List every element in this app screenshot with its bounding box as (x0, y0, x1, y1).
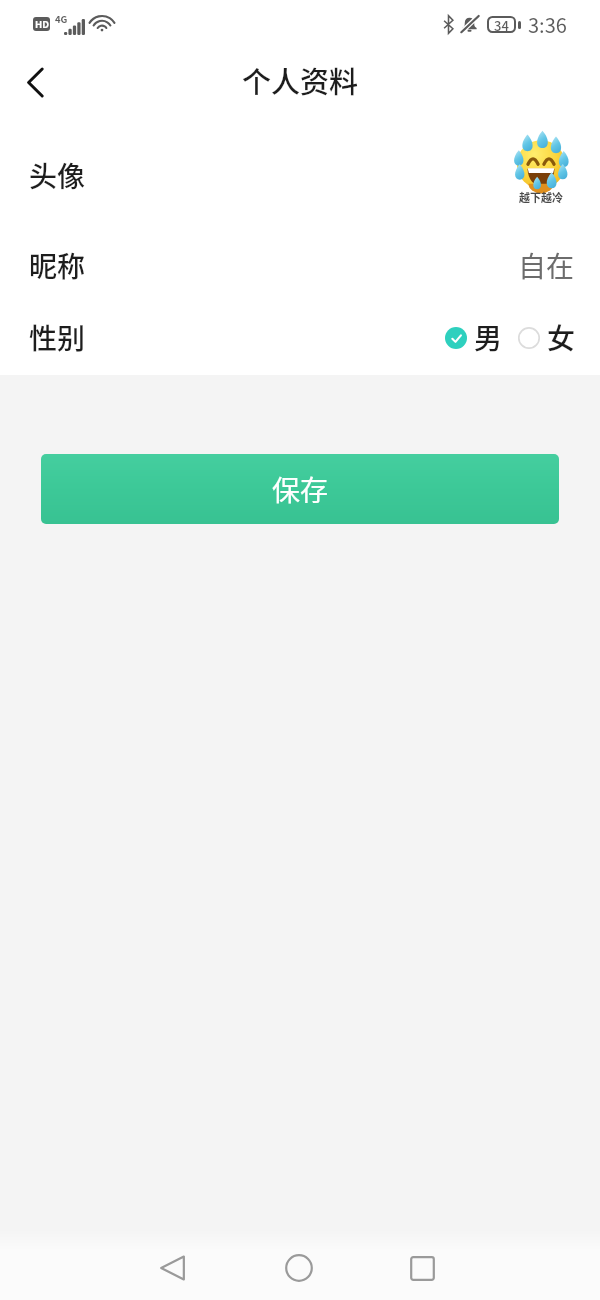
staticText: 自在 (518, 245, 575, 286)
button[interactable]: Recents (385, 1233, 459, 1300)
staticText: 女 (547, 317, 576, 358)
button[interactable]: 头像 (0, 120, 600, 231)
button[interactable]: 昵称 (0, 231, 600, 300)
staticText: 3:36 (528, 10, 567, 39)
staticText: 34 (494, 16, 509, 33)
staticText: 昵称 (29, 245, 86, 286)
staticText: 个人资料 (242, 59, 359, 101)
staticText: HD (35, 17, 49, 31)
staticText: 保存 (272, 469, 329, 510)
button[interactable]: 保存 (41, 454, 559, 524)
staticText: 男 (474, 317, 503, 358)
button[interactable]: 男 (445, 317, 503, 358)
staticText: 越下越冷 (519, 189, 563, 205)
button[interactable]: Home (262, 1233, 336, 1300)
button[interactable]: Back (135, 1233, 209, 1300)
staticText: 头像 (29, 155, 86, 196)
button[interactable]: 女 (518, 317, 576, 358)
button[interactable]: Back (0, 47, 70, 117)
staticText: 4G (55, 12, 68, 26)
staticText: 性别 (29, 317, 86, 358)
